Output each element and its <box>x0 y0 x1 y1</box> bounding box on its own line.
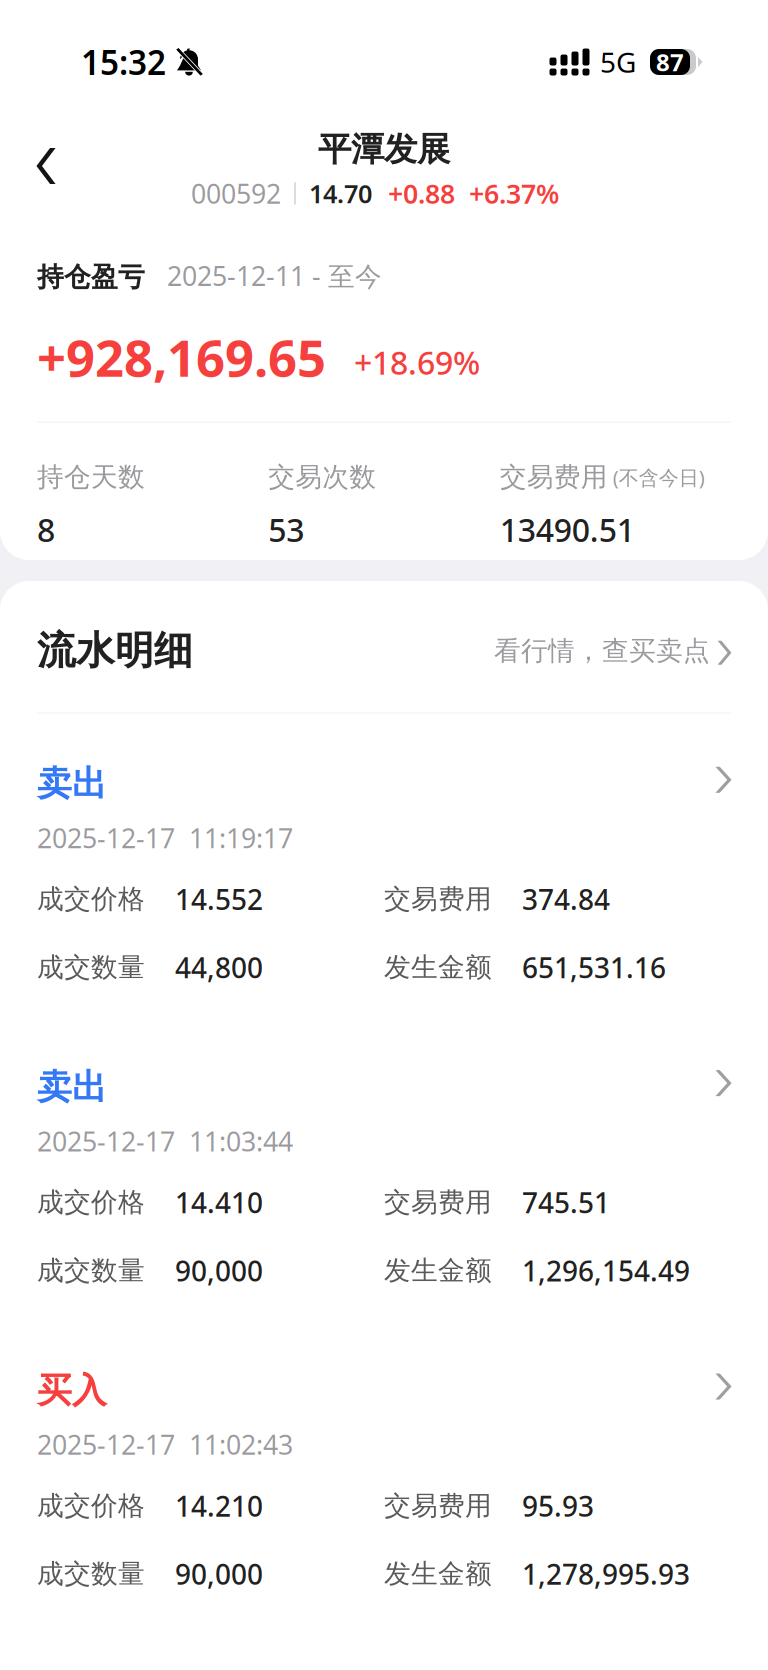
staticText: 卖出 <box>37 1066 107 1108</box>
staticText: 交易费用 <box>384 1186 492 1219</box>
staticText: 1,296,154.49 <box>522 1252 690 1289</box>
staticText: 交易次数 <box>268 461 376 493</box>
staticText: 2025-12-17 11:03:44 <box>37 1123 293 1159</box>
staticText: 流水明细 <box>37 627 193 674</box>
staticText: +0.88 <box>388 176 455 211</box>
staticText: 14.210 <box>175 1487 263 1524</box>
staticText: 卖出 <box>37 762 107 805</box>
staticText: 交易费用 <box>500 461 608 493</box>
staticText: 成交数量 <box>37 1254 145 1287</box>
staticText: 成交数量 <box>37 951 145 984</box>
staticText: 14.552 <box>175 880 263 918</box>
button[interactable]: 卖出 <box>0 1017 768 1320</box>
staticText: 发生金额 <box>384 1254 492 1287</box>
button[interactable]: 卖出 <box>0 713 768 1017</box>
staticText: 持仓盈亏 <box>37 261 145 293</box>
staticText: 44,800 <box>175 949 263 986</box>
staticText: 374.84 <box>522 880 610 918</box>
staticText: 15:32 <box>81 40 166 84</box>
staticText: 发生金额 <box>384 1558 492 1590</box>
staticText: 8 <box>37 508 55 551</box>
staticText: (不含今日) <box>613 464 705 490</box>
staticText: 90,000 <box>175 1252 263 1289</box>
staticText: 平潭发展 <box>318 129 450 170</box>
staticText: 看行情，查买卖点 <box>494 634 710 667</box>
staticText: 2025-12-11 - 至今 <box>167 258 382 293</box>
staticText: 651,531.16 <box>522 949 666 986</box>
staticText: 成交价格 <box>37 1489 145 1522</box>
staticText: 成交价格 <box>37 1186 145 1219</box>
staticText: 13490.51 <box>500 508 635 551</box>
staticText: 交易费用 <box>384 1489 492 1522</box>
staticText: 87 <box>656 46 684 78</box>
staticText: 持仓天数 <box>37 461 145 493</box>
button[interactable]: 看行情，查买卖点 <box>494 634 731 667</box>
staticText: 发生金额 <box>384 951 492 984</box>
staticText: 1,278,995.93 <box>522 1555 690 1593</box>
staticText: 买入 <box>37 1369 107 1412</box>
staticText: 成交价格 <box>37 883 145 915</box>
staticText: +6.37% <box>469 176 559 211</box>
staticText: 2025-12-17 11:02:43 <box>37 1427 293 1462</box>
staticText: 14.410 <box>175 1184 263 1221</box>
button[interactable]: 买入 <box>0 1320 768 1624</box>
staticText: 53 <box>268 508 304 551</box>
staticText: +18.69% <box>354 341 480 384</box>
button[interactable]: Back <box>8 138 84 214</box>
staticText: 成交数量 <box>37 1558 145 1590</box>
staticText: 000592 <box>191 176 281 211</box>
staticText: 745.51 <box>522 1184 610 1221</box>
staticText: 2025-12-17 11:19:17 <box>37 820 293 855</box>
staticText: 14.70 <box>309 177 372 210</box>
staticText: 90,000 <box>175 1555 263 1593</box>
staticText: 5G <box>600 43 636 81</box>
staticText: 95.93 <box>522 1487 594 1524</box>
staticText: +928,169.65 <box>37 323 326 391</box>
staticText: 交易费用 <box>384 883 492 915</box>
